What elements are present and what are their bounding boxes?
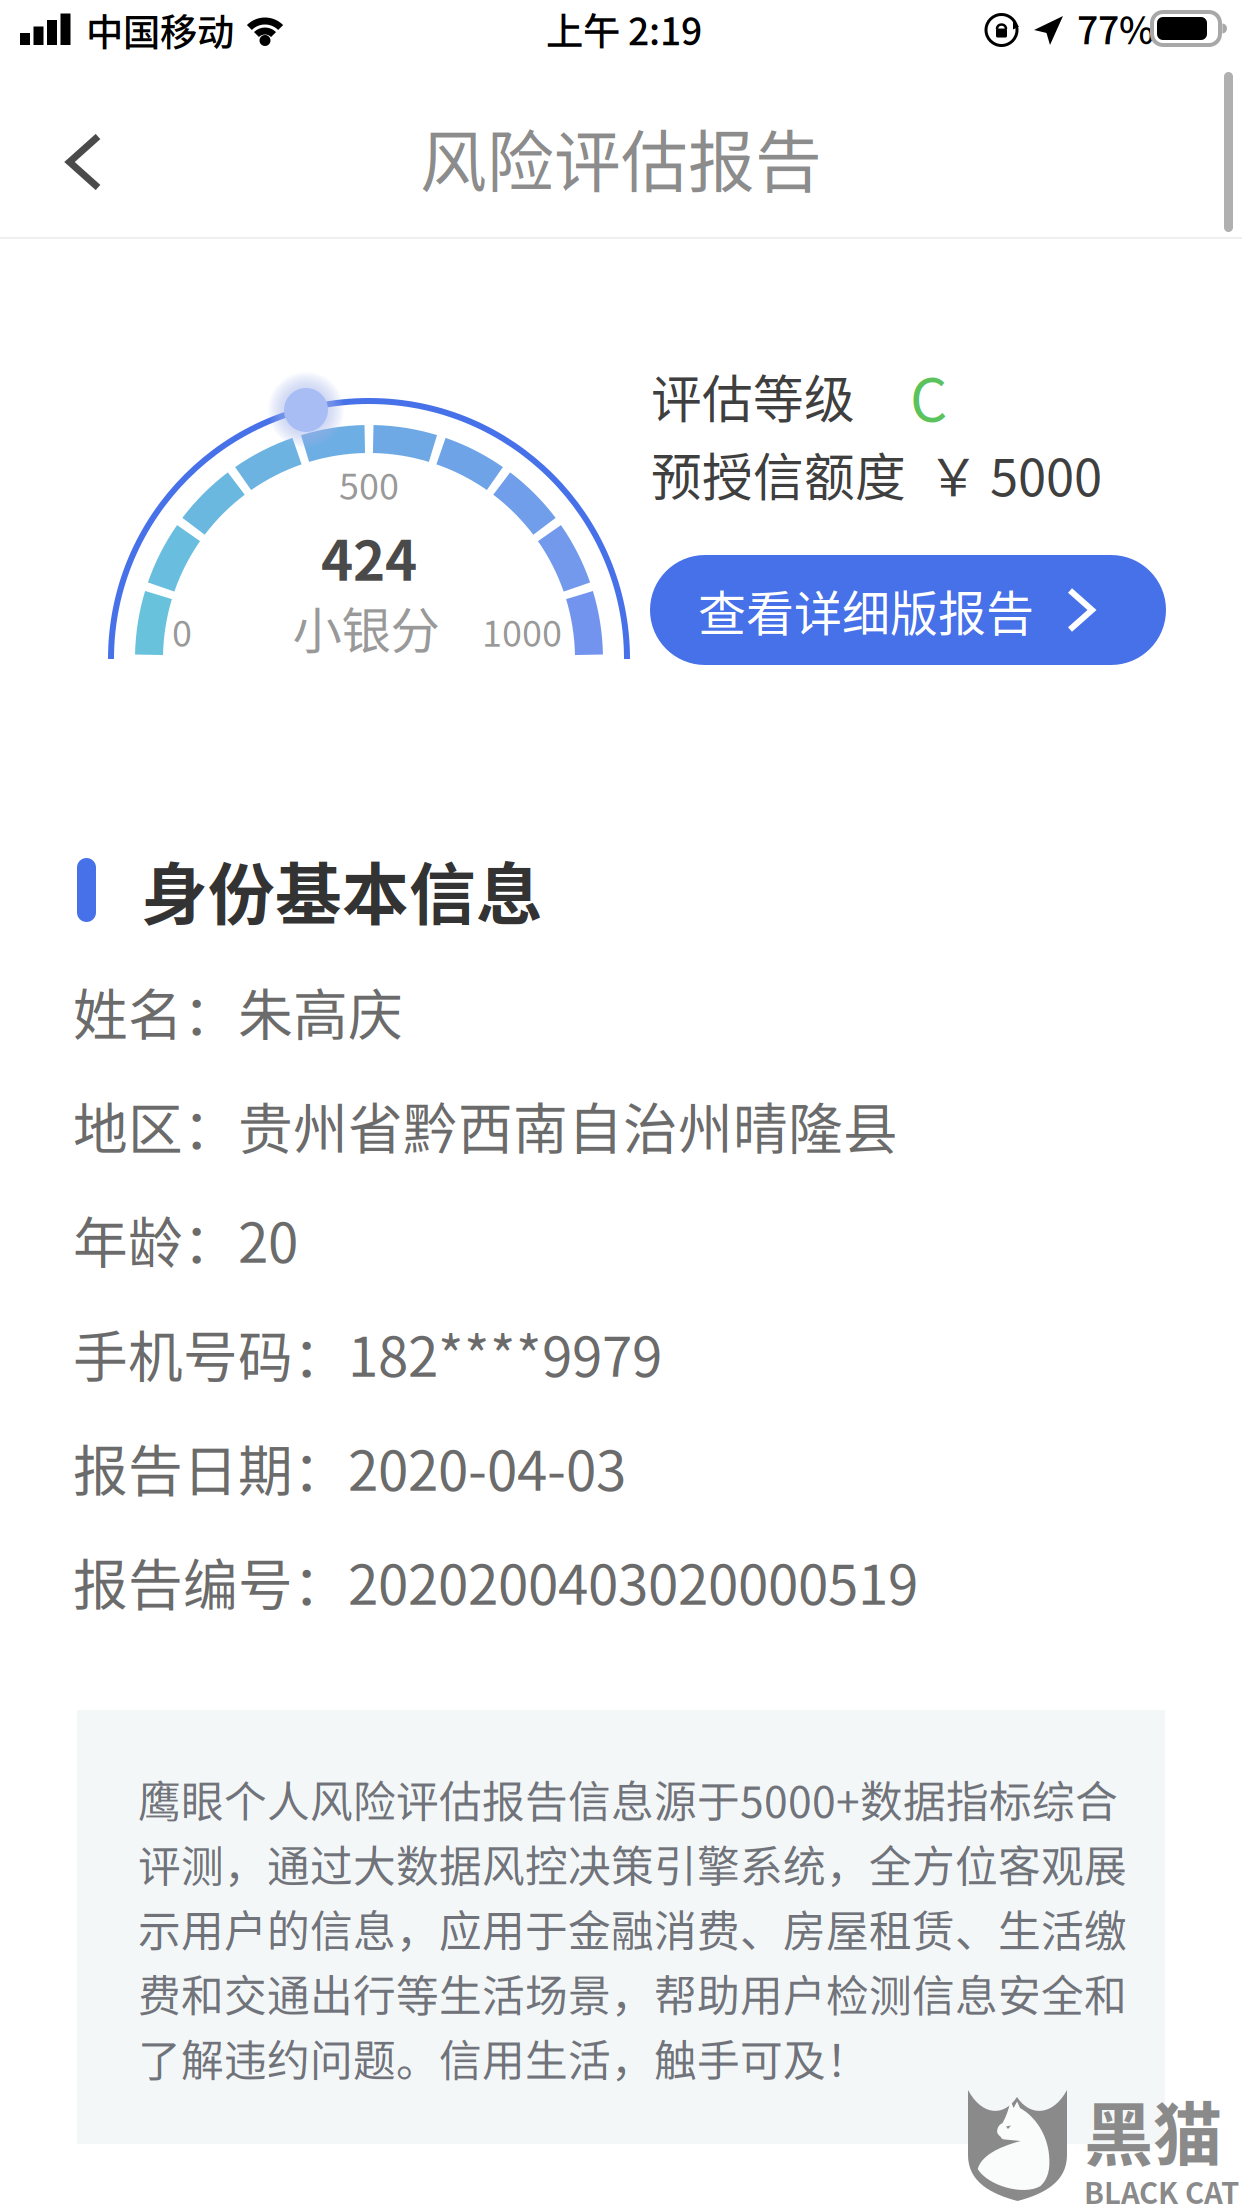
staticText: 黑猫 (1084, 2080, 1222, 2180)
staticText: 贵州省黔西南自治州晴隆县 (238, 1085, 898, 1165)
staticText: 报告编号： (73, 1541, 348, 1621)
staticText: 小银分 (292, 591, 439, 663)
staticText: 朱高庆 (238, 971, 403, 1051)
staticText: 查看详细版报告 (698, 575, 1034, 645)
staticText: 上午 2:19 (546, 2, 702, 56)
staticText: 中国移动 (86, 3, 234, 57)
staticText: C (910, 353, 947, 438)
staticText: 77% (1077, 1, 1154, 55)
staticText: 500 (339, 458, 399, 510)
staticText: 2020200403020000519 (348, 1541, 918, 1621)
staticText: ￥ 5000 (906, 437, 1102, 511)
button[interactable]: 查看详细版报告 (650, 555, 1166, 665)
staticText: 20 (238, 1199, 298, 1279)
button[interactable]: 返回 (0, 62, 170, 237)
staticText: 2020-04-03 (348, 1427, 626, 1507)
staticText: 424 (321, 517, 417, 597)
staticText: 评估等级 (651, 359, 855, 433)
staticText: 身份基本信息 (96, 842, 543, 938)
staticText: 1000 (482, 605, 562, 657)
staticText: 年龄： (73, 1199, 238, 1279)
staticText: 风险评估报告 (420, 109, 822, 206)
staticText: 182****9979 (348, 1313, 662, 1393)
staticText: 预授信额度 (651, 437, 906, 511)
staticText: 鹰眼个人风险评估报告信息源于5000+数据指标综合评测，通过大数据风控决策引擎系… (138, 1768, 1127, 2089)
staticText: 报告日期： (73, 1427, 348, 1507)
staticText: BLACK CAT (1084, 2170, 1239, 2208)
staticText: 地区： (73, 1085, 238, 1165)
staticText: 姓名： (73, 971, 238, 1051)
staticText: 手机号码： (73, 1313, 348, 1393)
staticText: 0 (172, 605, 192, 657)
